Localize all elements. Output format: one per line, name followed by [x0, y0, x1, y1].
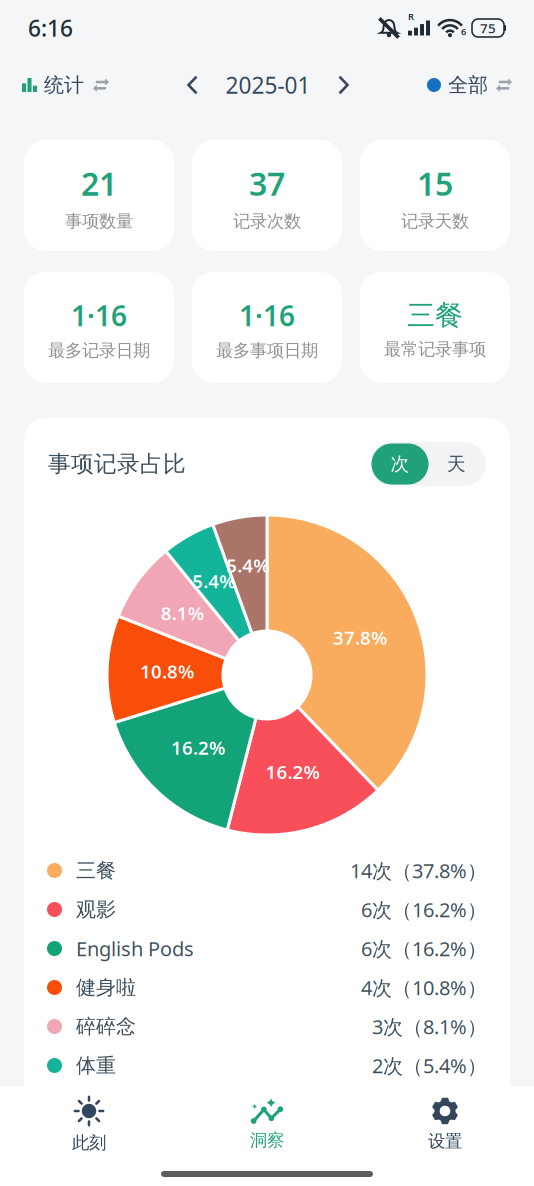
button[interactable]: 健身啦: [47, 968, 487, 1007]
button[interactable]: 设置: [356, 1097, 534, 1152]
button[interactable]: 碎碎念: [47, 1007, 487, 1046]
staticText: 16.2%: [265, 759, 319, 784]
staticText: 5.4%: [226, 553, 269, 578]
button[interactable]: Previous month: [181, 72, 203, 98]
button[interactable]: 三餐: [47, 851, 487, 890]
staticText: 三餐: [76, 858, 116, 883]
staticText: 3次（8.1%）: [372, 1013, 487, 1040]
button[interactable]: 次: [371, 443, 428, 484]
staticText: 此刻: [72, 1132, 106, 1153]
staticText: 1·16: [239, 297, 295, 334]
staticText: 2025-01: [225, 70, 310, 100]
staticText: 最多记录日期: [48, 340, 150, 361]
staticText: 21: [81, 162, 117, 205]
button[interactable]: 天: [428, 443, 484, 484]
staticText: 37: [249, 162, 285, 205]
staticText: 8.1%: [161, 601, 204, 625]
button[interactable]: 统计: [22, 73, 109, 97]
staticText: 最常记录事项: [384, 339, 486, 360]
staticText: 16.2%: [171, 735, 225, 760]
staticText: 健身啦: [76, 975, 136, 1000]
staticText: 事项数量: [65, 211, 133, 232]
staticText: 全部: [448, 73, 488, 97]
staticText: 2次（5.4%）: [372, 1052, 487, 1079]
button[interactable]: 观影: [47, 890, 487, 929]
staticText: 最多事项日期: [216, 340, 318, 361]
staticText: 体重: [76, 1053, 116, 1078]
button[interactable]: 体重: [47, 1046, 487, 1085]
button[interactable]: 全部: [427, 73, 512, 97]
staticText: 碎碎念: [76, 1014, 136, 1039]
button[interactable]: 洞察: [178, 1098, 356, 1151]
staticText: 洞察: [250, 1129, 284, 1151]
button[interactable]: 此刻: [0, 1096, 178, 1153]
staticText: R: [408, 10, 414, 22]
button[interactable]: English Pods: [47, 929, 487, 968]
staticText: 14次（37.8%）: [350, 857, 487, 884]
staticText: 6:16: [28, 13, 73, 43]
staticText: 6次（16.2%）: [361, 935, 487, 962]
staticText: 事项记录占比: [48, 450, 186, 478]
button[interactable]: Next month: [332, 72, 354, 98]
staticText: 次: [390, 452, 409, 475]
staticText: 75: [480, 19, 496, 37]
staticText: 1·16: [71, 297, 127, 334]
staticText: 设置: [428, 1130, 462, 1152]
staticText: 观影: [76, 897, 116, 922]
staticText: 6: [461, 25, 466, 37]
staticText: 记录次数: [233, 211, 301, 232]
staticText: 天: [447, 452, 466, 475]
staticText: 4次（10.8%）: [361, 974, 487, 1001]
staticText: English Pods: [76, 935, 194, 962]
staticText: 5.4%: [192, 568, 235, 593]
staticText: 6次（16.2%）: [361, 896, 487, 923]
staticText: 10.8%: [140, 659, 194, 684]
staticText: 记录天数: [401, 211, 469, 232]
staticText: 15: [417, 162, 453, 205]
staticText: 统计: [44, 73, 84, 97]
staticText: 三餐: [407, 298, 463, 333]
staticText: 37.8%: [333, 625, 387, 650]
